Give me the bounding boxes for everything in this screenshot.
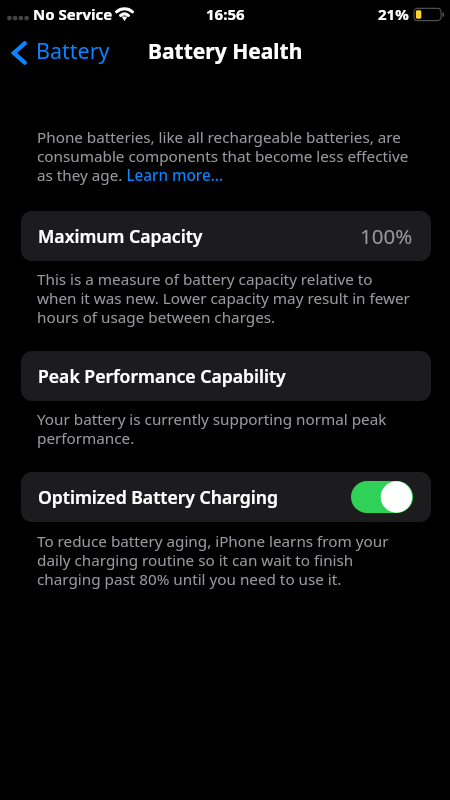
staticText: Battery	[36, 36, 110, 65]
staticText: Battery Health	[148, 37, 303, 66]
staticText: Optimized Battery Charging	[38, 485, 278, 509]
button[interactable]: Optimized Battery Charging	[21, 472, 431, 522]
staticText: 21%	[378, 4, 409, 24]
staticText: Phone batteries, like all rechargeable b…	[37, 127, 411, 185]
staticText: This is a measure of battery capacity re…	[37, 269, 411, 327]
button[interactable]: Peak Performance Capability	[21, 351, 431, 401]
staticText: To reduce battery aging, iPhone learns f…	[37, 531, 411, 589]
button[interactable]: Battery	[0, 34, 120, 71]
staticText: 16:56	[206, 4, 245, 24]
button[interactable]: Optimized Battery Charging toggle	[351, 481, 413, 513]
staticText: Maximum Capacity	[38, 224, 203, 248]
staticText: Your battery is currently supporting nor…	[37, 409, 411, 448]
staticText: Peak Performance Capability	[38, 364, 286, 388]
staticText: No Service	[33, 4, 113, 24]
staticText: 100%	[360, 222, 413, 250]
button[interactable]: Maximum Capacity	[21, 211, 431, 261]
